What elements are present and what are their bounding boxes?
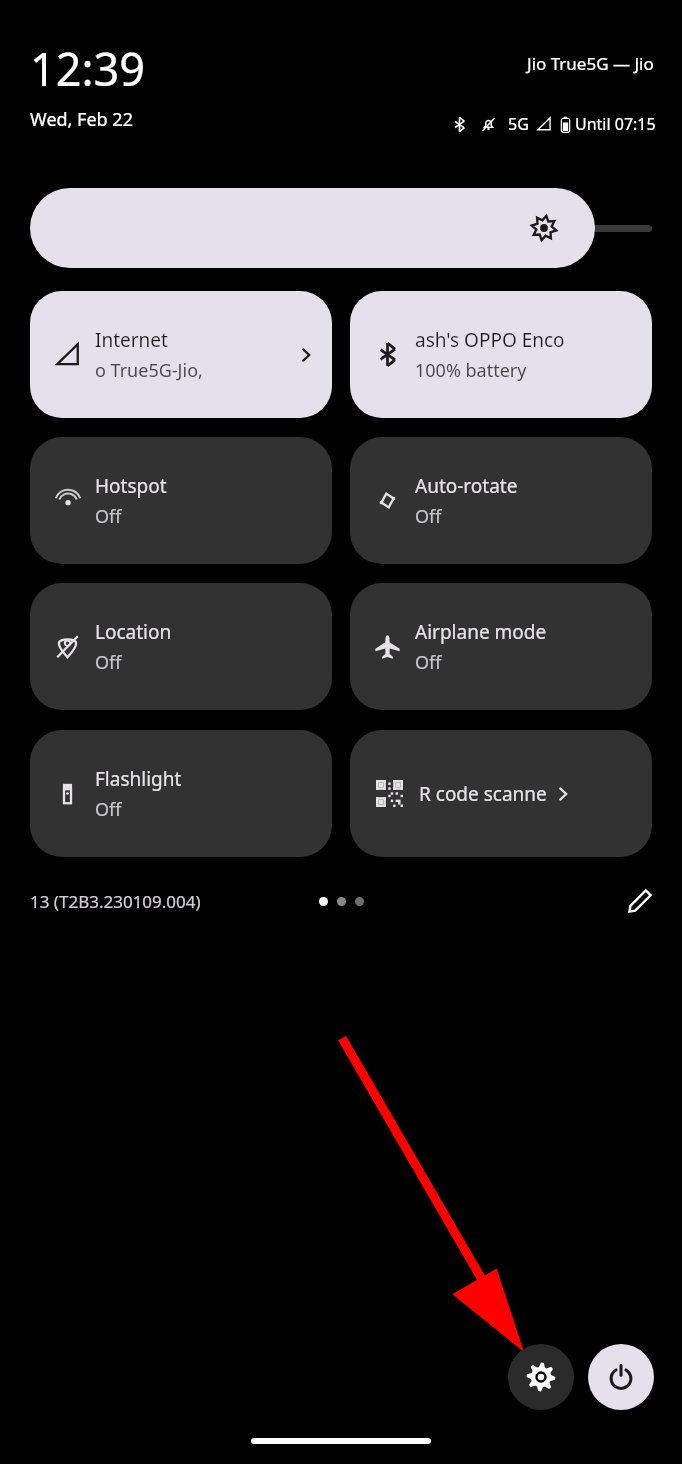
staticText: R code scanne [419, 781, 547, 807]
staticText: Off [95, 650, 122, 675]
staticText: Off [415, 650, 442, 675]
button[interactable]: Settings [508, 1344, 574, 1410]
staticText: Wed, Feb 22 [30, 107, 133, 132]
button[interactable]: ash's OPPO Enco [350, 291, 652, 418]
staticText: 100% battery [415, 358, 527, 383]
staticText: Auto-rotate [415, 473, 518, 499]
button[interactable]: Hotspot [30, 437, 332, 564]
staticText: o True5G-Jio, [95, 358, 203, 383]
staticText: 5G [508, 113, 529, 135]
button[interactable]: Brightness [30, 188, 595, 268]
button[interactable]: Airplane mode [350, 583, 652, 710]
staticText: Off [95, 504, 122, 529]
staticText: Off [415, 504, 442, 529]
button[interactable]: Flashlight [30, 730, 332, 857]
staticText: Jio True5G — Jio [527, 52, 654, 75]
staticText: Internet [95, 327, 168, 353]
staticText: Until 07:15 [575, 113, 656, 135]
staticText: Location [95, 619, 172, 645]
staticText: Hotspot [95, 473, 167, 499]
staticText: Airplane mode [415, 619, 547, 645]
button[interactable]: Edit tiles [618, 880, 662, 922]
staticText: Off [95, 797, 122, 822]
staticText: 13 (T2B3.230109.004) [30, 890, 201, 913]
button[interactable]: Auto-rotate [350, 437, 652, 564]
staticText: ash's OPPO Enco [415, 327, 565, 353]
staticText: 12:39 [30, 38, 146, 99]
button[interactable]: Location [30, 583, 332, 710]
button[interactable]: Internet [30, 291, 332, 418]
button[interactable]: R code scanne [350, 730, 652, 857]
button[interactable]: Power [588, 1344, 654, 1410]
staticText: Flashlight [95, 766, 182, 792]
